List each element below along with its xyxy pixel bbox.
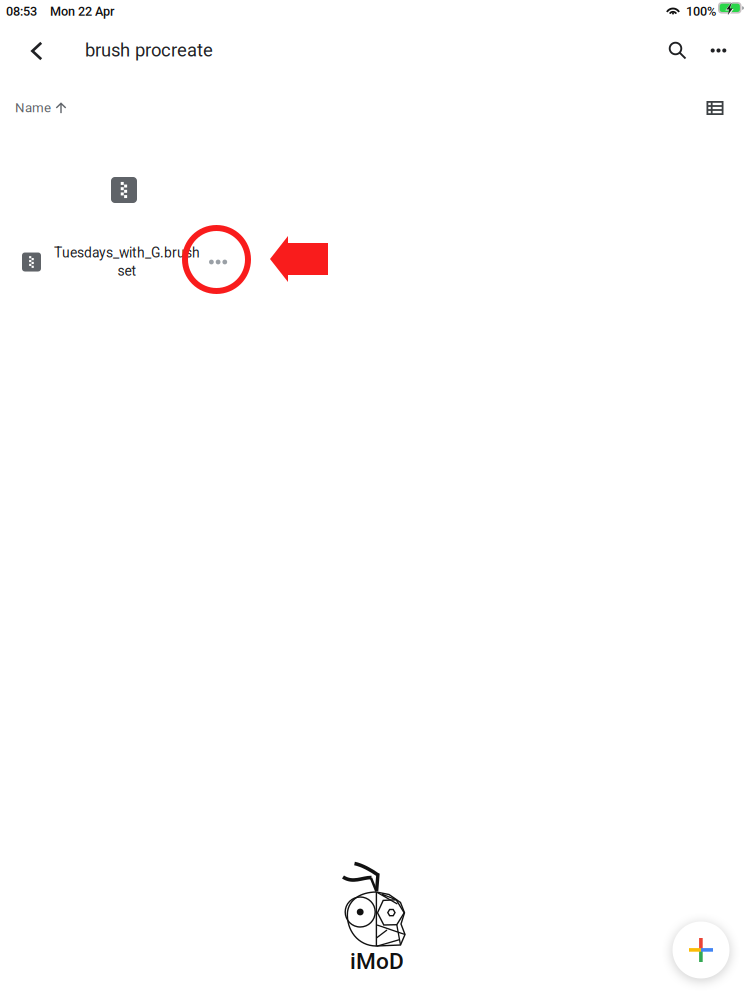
button[interactable]: More options bbox=[695, 27, 741, 73]
button[interactable]: Switch to list view bbox=[698, 92, 732, 124]
button[interactable]: Name bbox=[11, 90, 71, 126]
staticText: Name bbox=[15, 100, 51, 116]
staticText: set bbox=[117, 263, 136, 279]
staticText: Tuesdays_with_G.brush bbox=[54, 245, 200, 261]
staticText: brush procreate bbox=[85, 39, 213, 61]
button[interactable]: Tuesdays_with_G.brush bbox=[0, 236, 340, 288]
button[interactable]: Search bbox=[655, 28, 701, 74]
staticText: Mon 22 Apr bbox=[50, 4, 114, 19]
button[interactable]: Back bbox=[14, 28, 60, 74]
staticText: 100% bbox=[686, 4, 716, 19]
staticText: iMoD bbox=[350, 948, 404, 975]
button[interactable]: Create new bbox=[671, 920, 731, 980]
staticText: 08:53 bbox=[6, 4, 37, 19]
